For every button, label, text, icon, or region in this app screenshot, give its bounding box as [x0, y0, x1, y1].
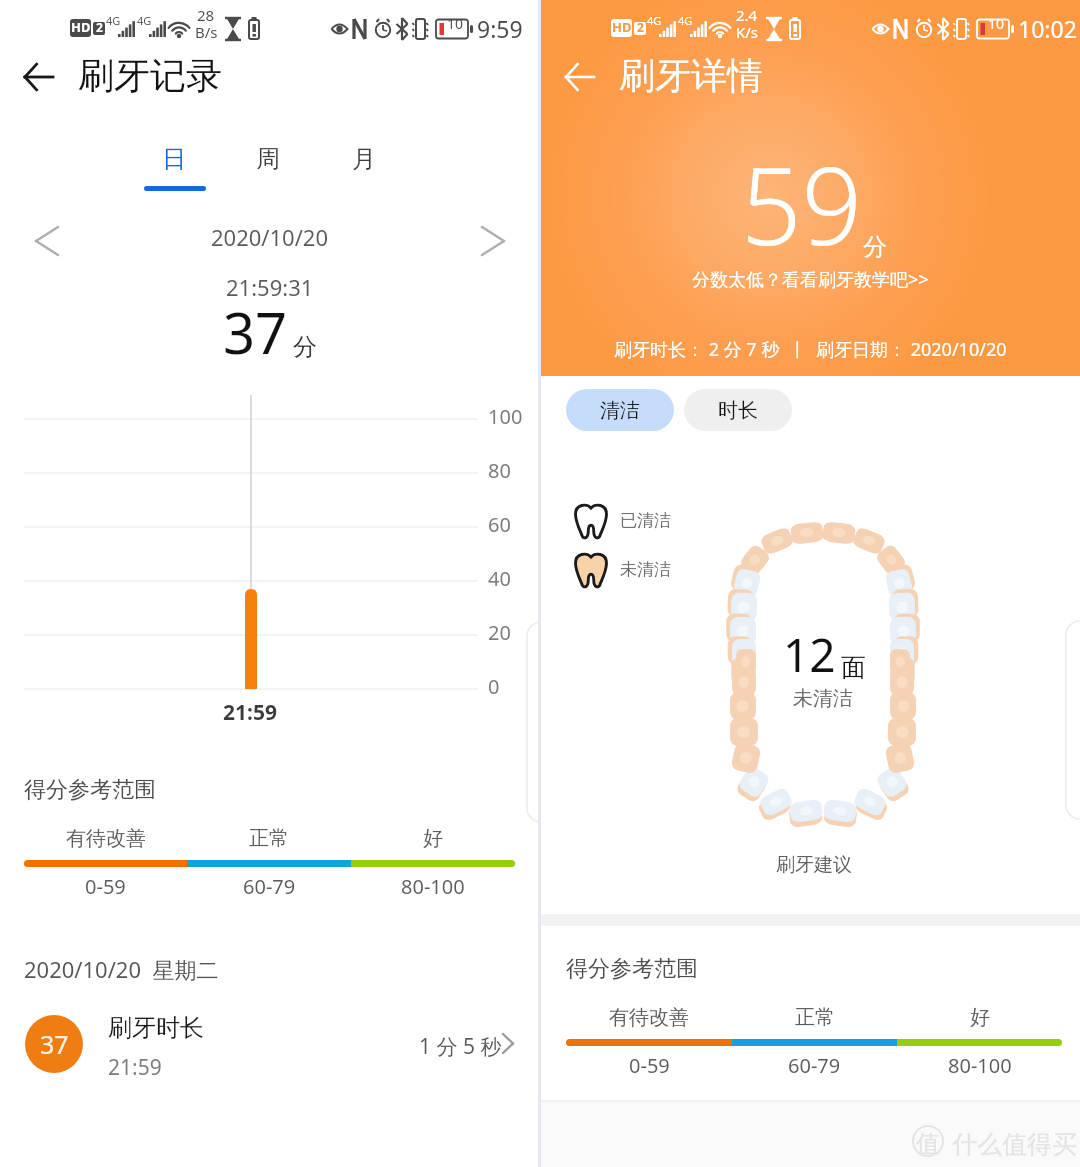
- button[interactable]: 分数太低？看看刷牙教学吧>>: [692, 267, 929, 292]
- staticText: 37: [40, 1027, 69, 1061]
- staticText: B/s: [195, 22, 218, 42]
- staticText: 好: [970, 1005, 990, 1030]
- staticText: 刷牙时长: [108, 1013, 204, 1043]
- staticText: 未清洁: [620, 559, 671, 580]
- button[interactable]: 月: [318, 144, 410, 218]
- staticText: 2020/10/20 星期二: [24, 954, 219, 984]
- button[interactable]: Back: [555, 54, 605, 100]
- staticText: 刷牙记录: [78, 53, 222, 98]
- staticText: 12: [783, 623, 836, 686]
- button[interactable]: Back: [14, 54, 64, 100]
- staticText: 2.4: [736, 5, 758, 25]
- staticText: HD: [71, 18, 91, 36]
- button[interactable]: 清洁: [566, 389, 674, 431]
- staticText: 2: [96, 19, 103, 35]
- staticText: 4G: [106, 13, 121, 28]
- staticText: 0-59: [629, 1052, 670, 1079]
- staticText: 已清洁: [620, 510, 671, 531]
- staticText: 21:59: [108, 1053, 162, 1082]
- staticText: 周: [256, 144, 280, 174]
- staticText: 0-59: [85, 873, 126, 900]
- staticText: 正常: [249, 826, 289, 851]
- staticText: 1 分 5 秒: [419, 1032, 502, 1061]
- staticText: 4G: [647, 13, 662, 28]
- staticText: 37: [223, 294, 288, 370]
- button[interactable]: Previous day: [24, 218, 70, 264]
- staticText: 2: [637, 19, 644, 35]
- button[interactable]: 时长: [684, 389, 792, 431]
- button[interactable]: 37: [0, 1003, 540, 1087]
- staticText: 刷牙建议: [776, 853, 852, 877]
- staticText: 什么值得买: [952, 1129, 1077, 1160]
- staticText: HD: [612, 18, 632, 36]
- staticText: 未清洁: [793, 686, 853, 711]
- staticText: 60: [488, 511, 511, 538]
- staticText: 刷牙时长： 2 分 7 秒 丨 刷牙日期： 2020/10/20: [614, 337, 1007, 362]
- staticText: 9:59: [477, 13, 523, 44]
- button[interactable]: 日: [128, 144, 220, 218]
- staticText: 2020/10/20: [211, 222, 329, 252]
- staticText: 59: [741, 132, 863, 276]
- staticText: 好: [423, 826, 443, 851]
- staticText: 21:59: [223, 698, 277, 727]
- staticText: 21:59:31: [226, 272, 314, 302]
- staticText: 刷牙详情: [619, 53, 763, 98]
- staticText: 得分参考范围: [566, 955, 698, 983]
- staticText: 清洁: [600, 398, 640, 423]
- staticText: 10: [988, 14, 1005, 33]
- button[interactable]: 周: [222, 144, 314, 218]
- staticText: 月: [352, 144, 376, 174]
- staticText: 10:02: [1018, 13, 1077, 44]
- staticText: 面: [841, 652, 866, 683]
- staticText: 60-79: [243, 873, 296, 900]
- button[interactable]: 刷牙建议: [776, 853, 852, 877]
- staticText: 分数太低？看看刷牙教学吧>>: [692, 267, 929, 292]
- staticText: 100: [488, 403, 523, 430]
- staticText: K/s: [736, 22, 759, 42]
- staticText: 40: [488, 565, 511, 592]
- staticText: 得分参考范围: [24, 776, 156, 804]
- staticText: 10: [447, 14, 464, 33]
- staticText: 28: [197, 5, 215, 25]
- staticText: 分: [293, 332, 317, 362]
- staticText: 60-79: [788, 1052, 841, 1079]
- staticText: 20: [488, 619, 511, 646]
- staticText: 分: [863, 232, 887, 262]
- staticText: 有待改善: [66, 826, 146, 851]
- staticText: 有待改善: [609, 1005, 689, 1030]
- button[interactable]: Next day: [470, 218, 516, 264]
- staticText: 4G: [678, 13, 693, 28]
- staticText: 时长: [718, 398, 758, 423]
- staticText: 80-100: [948, 1052, 1012, 1079]
- staticText: 4G: [137, 13, 152, 28]
- staticText: 80: [488, 457, 511, 484]
- staticText: 正常: [795, 1005, 835, 1030]
- staticText: 0: [488, 673, 500, 700]
- staticText: 日: [162, 144, 186, 174]
- staticText: 值: [916, 1129, 940, 1159]
- staticText: 80-100: [401, 873, 465, 900]
